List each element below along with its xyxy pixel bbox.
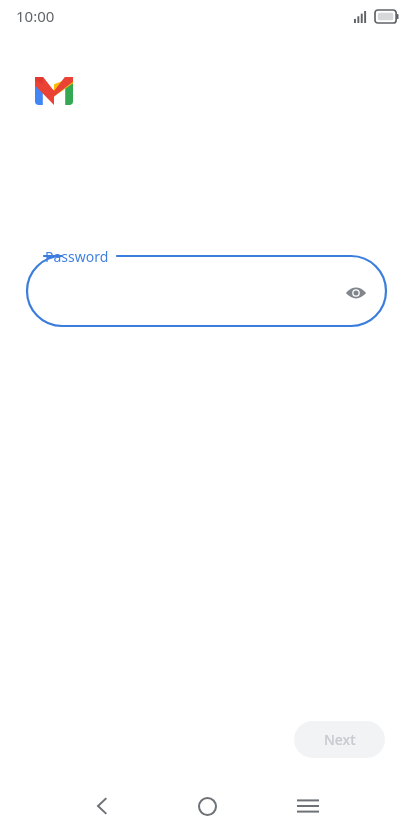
- button[interactable]: Show password: [342, 279, 370, 307]
- button[interactable]: Back: [78, 782, 126, 830]
- staticText: 10:00: [16, 6, 55, 26]
- button[interactable]: Next: [294, 721, 385, 758]
- staticText: Password: [45, 247, 109, 266]
- button[interactable]: Home: [183, 782, 231, 830]
- button[interactable]: Password: [27, 246, 386, 330]
- staticText: Next: [324, 730, 356, 749]
- other: Gmail: [35, 77, 73, 105]
- button[interactable]: Recent apps: [284, 782, 332, 830]
